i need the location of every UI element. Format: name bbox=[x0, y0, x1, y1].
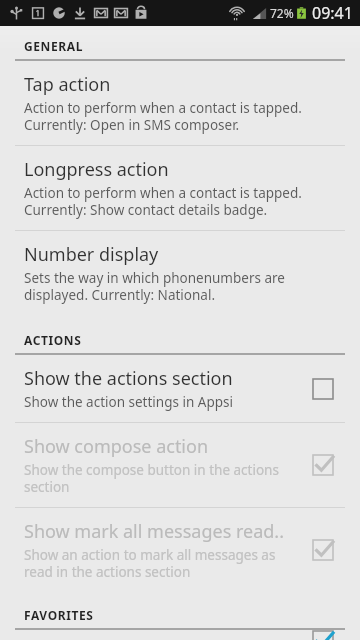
staticText: Number display bbox=[24, 242, 159, 267]
staticText: 09:41 bbox=[312, 2, 353, 24]
button[interactable]: Show mark all messages read.. bbox=[306, 533, 340, 567]
staticText: GENERAL bbox=[24, 38, 83, 54]
staticText: Action to perform when a contact is tapp… bbox=[24, 99, 302, 134]
button[interactable]: Show compose action bbox=[306, 448, 340, 482]
staticText: 72% bbox=[270, 5, 294, 21]
button[interactable]: Tap action bbox=[0, 61, 360, 145]
button[interactable]: Show the actions section bbox=[306, 372, 340, 406]
staticText: ACTIONS bbox=[24, 332, 82, 348]
staticText: Tap action bbox=[24, 72, 111, 97]
staticText: Show mark all messages read.. bbox=[24, 519, 284, 544]
button[interactable]: Longpress action bbox=[0, 146, 360, 230]
staticText: Sets the way in which phonenumbers are d… bbox=[24, 269, 285, 304]
button[interactable]: Show favorites bbox=[0, 630, 360, 640]
staticText: Show the action settings in Appsi bbox=[24, 393, 233, 411]
staticText: Action to perform when a contact is tapp… bbox=[24, 184, 302, 219]
button[interactable]: Show compose action bbox=[0, 423, 360, 507]
staticText: Show the actions section bbox=[24, 366, 233, 391]
staticText: Longpress action bbox=[24, 157, 169, 182]
button[interactable]: Show the actions section bbox=[0, 355, 360, 422]
staticText: FAVORITES bbox=[24, 607, 94, 623]
staticText: Show the compose button in the actions s… bbox=[24, 461, 279, 496]
button[interactable]: Number display bbox=[0, 231, 360, 315]
staticText: Show compose action bbox=[24, 434, 209, 459]
staticText: Show an action to mark all messages as r… bbox=[24, 546, 276, 581]
button[interactable]: Show mark all messages read.. bbox=[0, 508, 360, 592]
